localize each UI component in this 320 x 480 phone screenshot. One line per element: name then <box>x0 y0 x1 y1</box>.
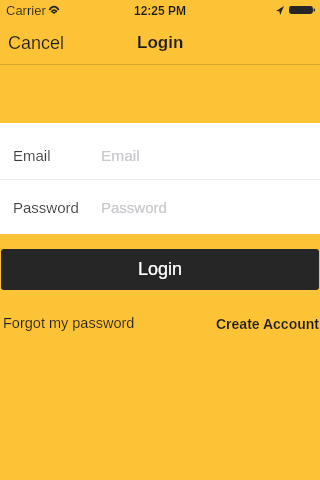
staticText: Login <box>138 259 183 279</box>
button[interactable]: Create Account <box>216 316 319 332</box>
staticText: Cancel <box>8 33 65 53</box>
button[interactable]: Cancel <box>0 27 73 59</box>
button[interactable]: Forgot my password <box>3 315 135 331</box>
staticText: Password <box>13 199 79 216</box>
button[interactable]: Password <box>0 180 320 234</box>
staticText: Email <box>101 147 140 164</box>
staticText: Email <box>13 147 51 164</box>
other: Battery <box>289 6 315 14</box>
other: Location <box>276 6 284 15</box>
staticText: Password <box>101 199 167 216</box>
staticText: Carrier <box>6 3 46 18</box>
staticText: Forgot my password <box>3 315 135 331</box>
button[interactable]: Login <box>1 249 319 290</box>
button[interactable]: Email <box>0 123 320 179</box>
staticText: 12:25 PM <box>134 4 187 17</box>
staticText: Create Account <box>216 316 319 332</box>
staticText: Login <box>137 33 184 52</box>
other: Wi-Fi <box>48 5 60 14</box>
